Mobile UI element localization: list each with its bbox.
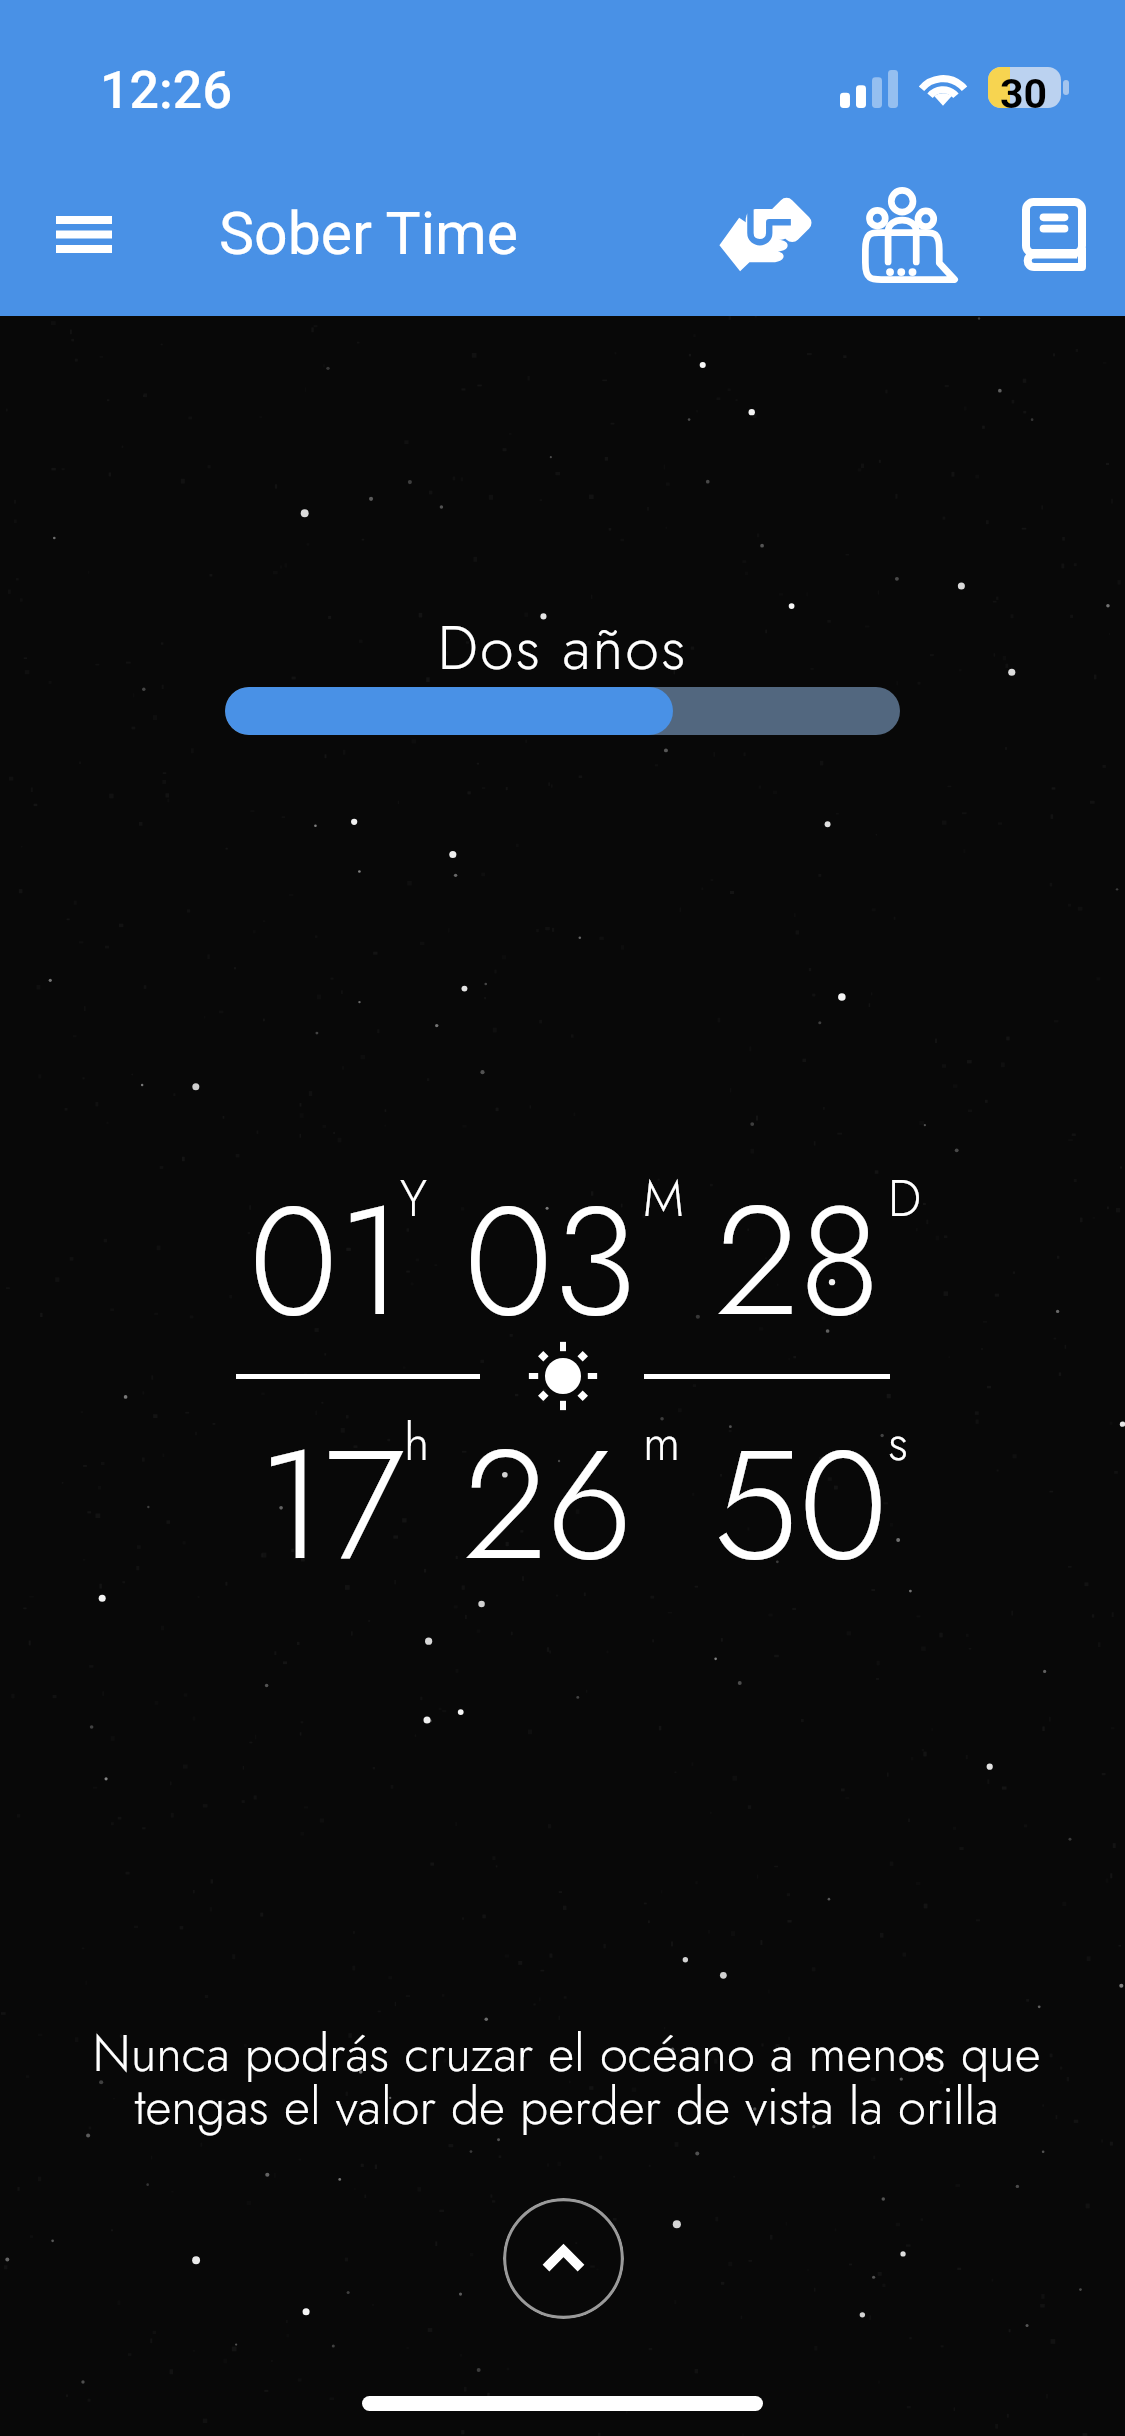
staticText: s — [888, 1406, 909, 1478]
button[interactable]: Community — [862, 187, 966, 295]
staticText: D — [888, 1162, 922, 1234]
button[interactable]: Donate — [711, 182, 819, 290]
staticText: Sober Time — [219, 199, 519, 268]
staticText: 01 — [249, 1150, 405, 1371]
staticText: 28 — [715, 1150, 881, 1371]
staticText: 30 — [1000, 70, 1048, 118]
staticText: m — [643, 1406, 681, 1478]
staticText: Y — [400, 1162, 427, 1234]
staticText: M — [643, 1162, 684, 1234]
staticText: 50 — [713, 1394, 888, 1615]
staticText: 17 — [258, 1394, 405, 1615]
staticText: 12:26 — [100, 60, 232, 121]
button[interactable]: Journal — [1000, 180, 1108, 288]
staticText: 26 — [463, 1394, 633, 1615]
staticText: 03 — [464, 1150, 637, 1371]
button[interactable]: Next milestone: Dos años — [225, 596, 900, 735]
staticText: Dos años — [225, 604, 900, 692]
button[interactable]: Menu — [24, 174, 144, 294]
staticText: Nunca podrás cruzar el océano a menos qu… — [88, 2017, 1045, 2142]
button[interactable]: Expand — [503, 2198, 624, 2319]
staticText: h — [404, 1406, 430, 1478]
